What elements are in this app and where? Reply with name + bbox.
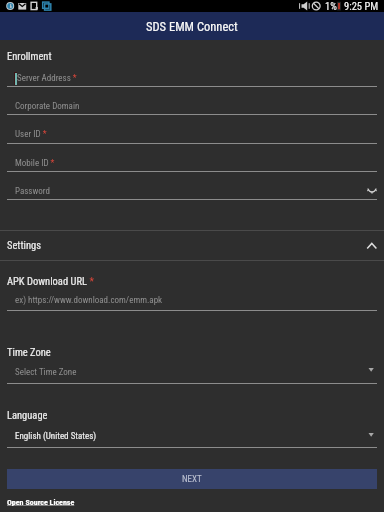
button[interactable]: Open Source License [7, 498, 75, 507]
staticText: 1% [325, 0, 337, 12]
staticText: Password [15, 186, 50, 197]
button[interactable]: Corporate Domain [0, 96, 384, 116]
staticText: NEXT [182, 474, 202, 485]
staticText: Server Address * [17, 73, 77, 84]
other: Collapse Settings [361, 234, 383, 256]
button[interactable]: Settings [0, 230, 384, 259]
staticText: English (United States) [15, 431, 97, 442]
staticText: Open Source License [7, 498, 75, 507]
staticText: APK Download URL * [7, 275, 94, 287]
button[interactable]: User ID * [0, 124, 384, 144]
staticText: Mobile ID * [15, 158, 55, 169]
other: Open dropdown [363, 428, 379, 444]
button[interactable]: Server Address * [0, 68, 384, 88]
staticText: Settings [7, 239, 42, 251]
staticText: SDS EMM Connect [146, 19, 238, 34]
staticText: Corporate Domain [15, 101, 80, 112]
staticText: Language [7, 409, 48, 421]
button[interactable]: Password [0, 181, 384, 201]
staticText: Time Zone [7, 346, 51, 358]
other: Open dropdown [363, 363, 379, 379]
button[interactable]: Mobile ID * [0, 153, 384, 173]
staticText: User ID * [15, 129, 47, 140]
staticText: Enrollment [7, 50, 52, 62]
staticText: Select Time Zone [15, 367, 77, 378]
button[interactable]: NEXT [7, 469, 377, 489]
staticText: ex) https://www.download.com/emm.apk [15, 295, 163, 306]
staticText: 9:25 PM [344, 0, 379, 12]
